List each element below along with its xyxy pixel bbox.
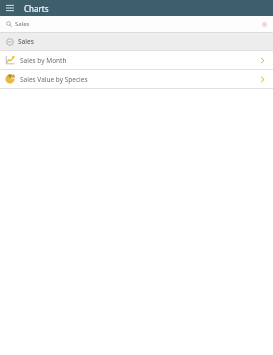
button[interactable]: Clear search bbox=[260, 20, 268, 28]
staticText: Charts bbox=[24, 3, 49, 14]
button[interactable]: Sales bbox=[0, 33, 273, 50]
staticText: Sales bbox=[18, 37, 34, 46]
button[interactable]: Open navigation menu bbox=[4, 2, 16, 14]
staticText: Sales bbox=[15, 20, 30, 28]
staticText: Sales Value by Species bbox=[20, 75, 88, 84]
button[interactable]: Sales bbox=[0, 16, 273, 32]
other: Open Sales Value by Species bbox=[257, 74, 267, 84]
button[interactable]: Sales by Month bbox=[0, 51, 273, 69]
staticText: Sales by Month bbox=[20, 56, 67, 65]
other: Open Sales by Month bbox=[257, 55, 267, 65]
button[interactable]: Sales Value by Species bbox=[0, 70, 273, 88]
